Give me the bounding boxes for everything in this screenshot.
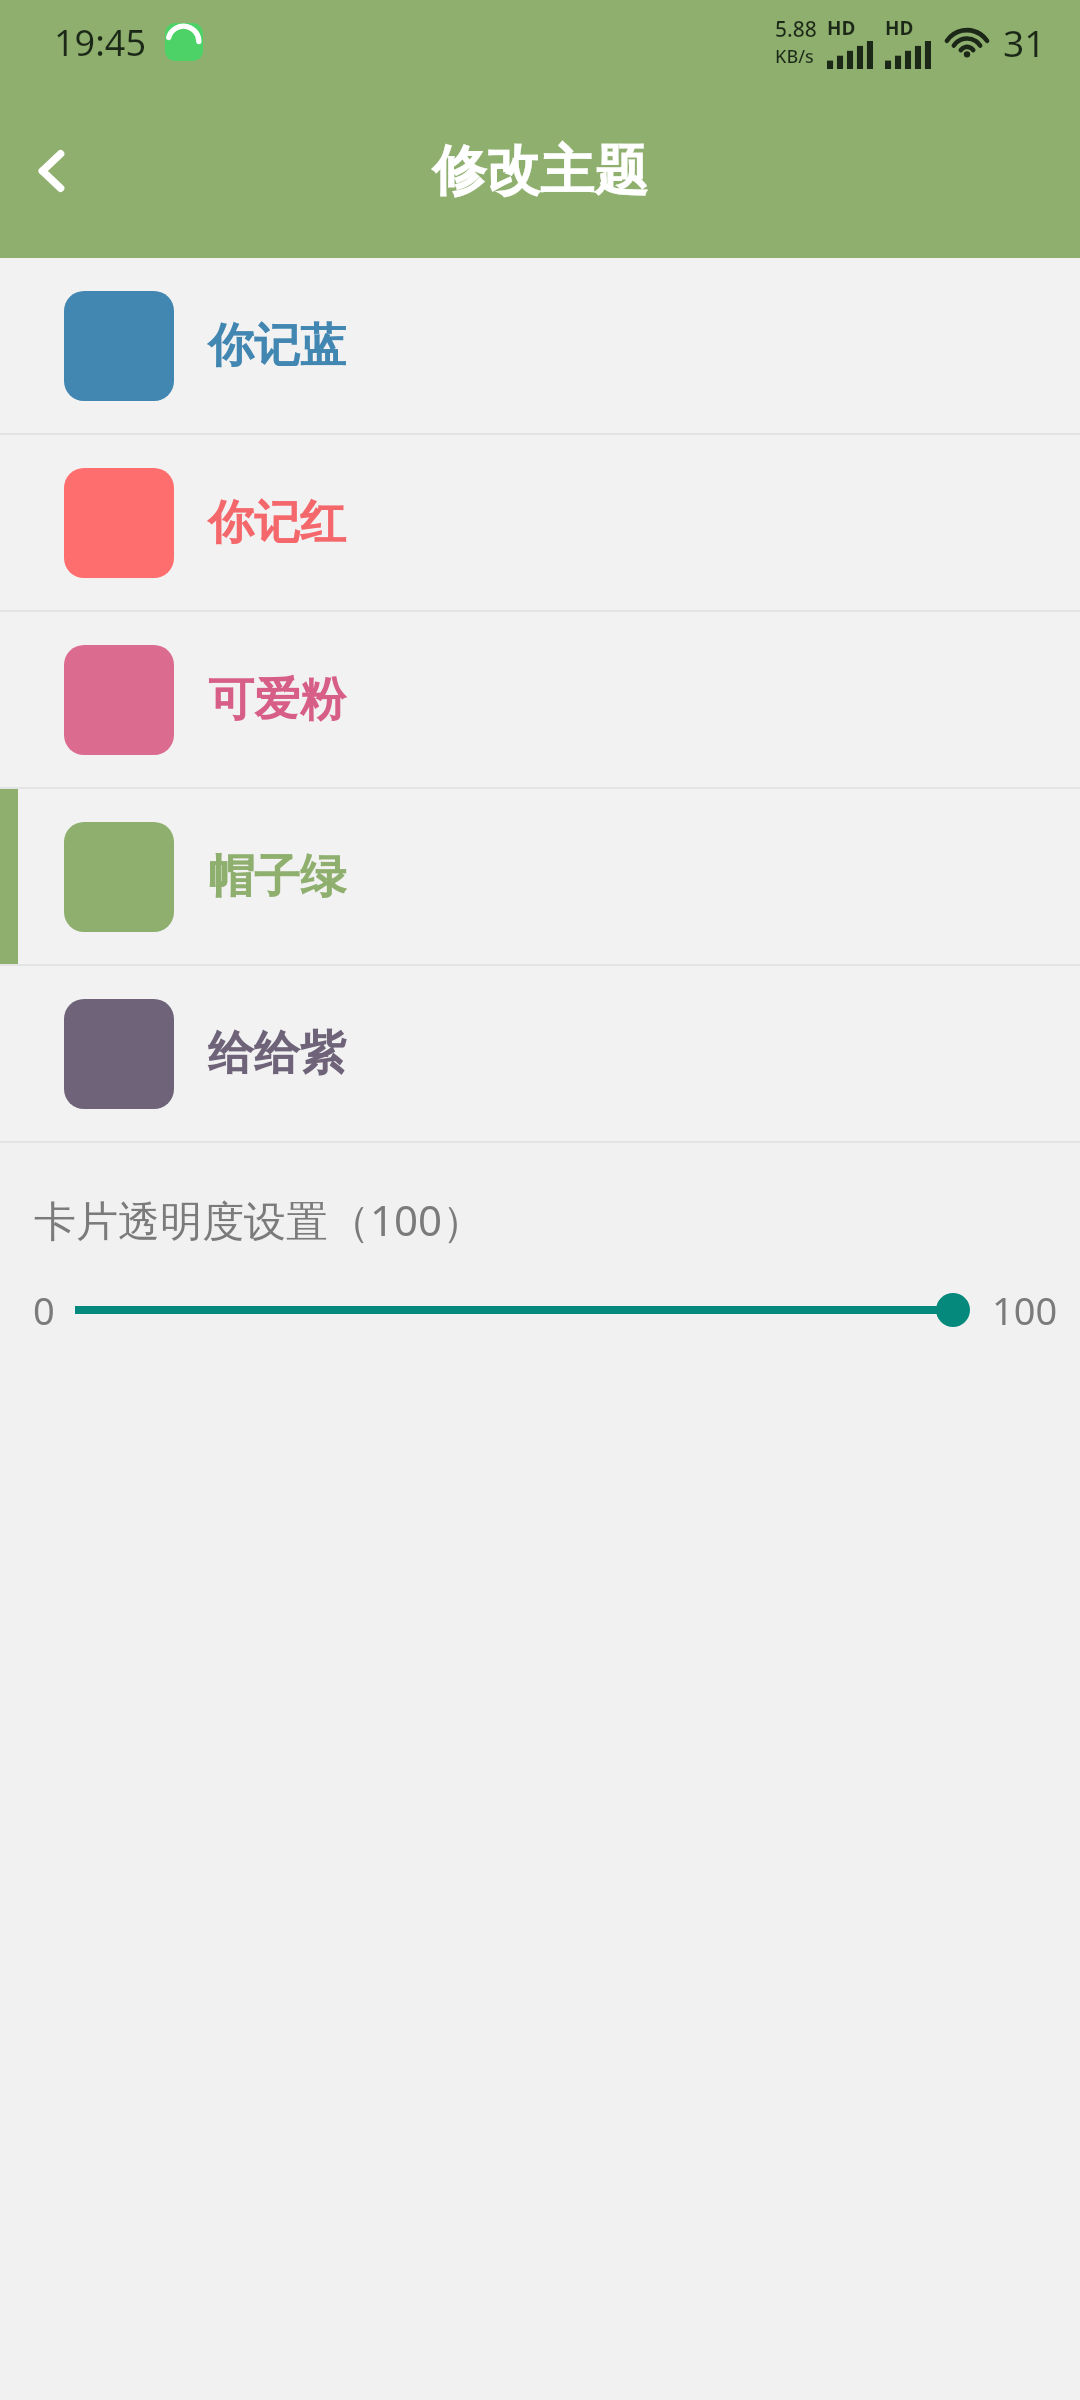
staticText: 修改主题 (432, 137, 648, 205)
staticText: HD (885, 15, 914, 41)
staticText: 100 (992, 1284, 1058, 1336)
button[interactable]: 你记红 (0, 435, 1080, 610)
staticText: 可爱粉 (208, 671, 346, 729)
button[interactable]: 0 (0, 1282, 1080, 1338)
staticText: KB/s (775, 44, 814, 69)
staticText: 19:45 (54, 18, 147, 67)
staticText: 你记红 (208, 494, 346, 552)
staticText: HD (827, 15, 856, 41)
button[interactable]: 帽子绿 (0, 789, 1080, 964)
staticText: 卡片透明度设置（100） (34, 1191, 485, 1248)
button[interactable]: Back (4, 123, 100, 219)
staticText: 0 (33, 1284, 55, 1336)
staticText: 给给紫 (208, 1025, 346, 1083)
button[interactable]: 可爱粉 (0, 612, 1080, 787)
button[interactable]: 给给紫 (0, 966, 1080, 1141)
staticText: 5.88 (775, 15, 817, 44)
staticText: 你记蓝 (208, 317, 346, 375)
button[interactable]: 你记蓝 (0, 258, 1080, 433)
staticText: 帽子绿 (208, 848, 346, 906)
staticText: 31 (1003, 17, 1046, 67)
